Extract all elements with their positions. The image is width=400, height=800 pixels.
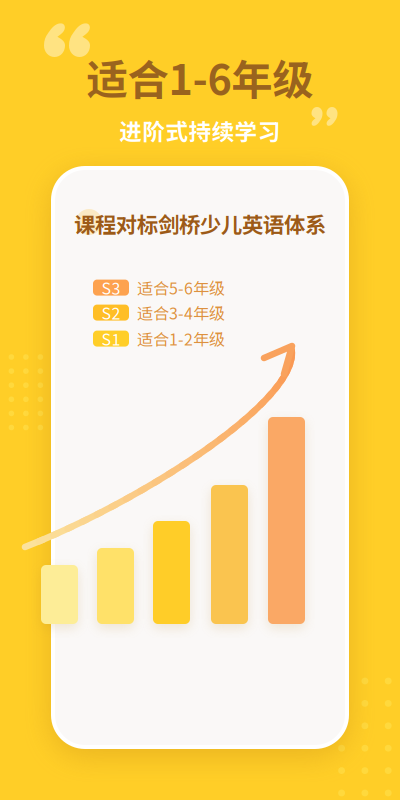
button[interactable]: S1	[93, 327, 225, 350]
staticText: S3	[101, 276, 120, 299]
button[interactable]: S2	[93, 301, 225, 324]
staticText: 进阶式持续学习	[119, 114, 280, 147]
staticText: 适合1-2年级	[137, 327, 225, 350]
staticText: 适合3-4年级	[137, 301, 225, 324]
staticText: 课程对标剑桥少儿英语体系	[74, 208, 326, 239]
staticText: S1	[101, 327, 120, 350]
button[interactable]: S3	[93, 276, 225, 299]
staticText: S2	[101, 301, 120, 324]
staticText: 适合1-6年级	[86, 47, 313, 107]
staticText: 适合5-6年级	[137, 276, 225, 299]
